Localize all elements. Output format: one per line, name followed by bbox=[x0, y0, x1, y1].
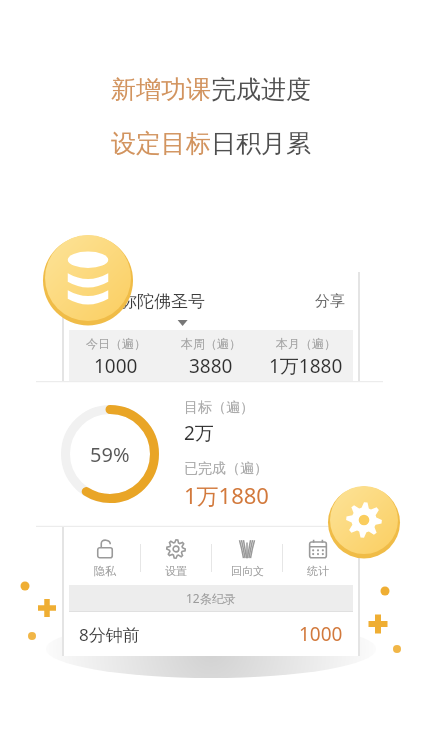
staticText: 59% bbox=[90, 441, 130, 468]
staticText: 本月（遍） bbox=[276, 336, 336, 351]
staticText: 阿弥陀佛圣号 bbox=[103, 291, 205, 312]
button[interactable]: 回向文 bbox=[212, 531, 282, 585]
button[interactable]: 统计 bbox=[283, 531, 353, 585]
staticText: 3880 bbox=[189, 353, 233, 379]
button[interactable]: 本周（遍） bbox=[163, 336, 258, 379]
staticText: 日积月累 bbox=[211, 128, 311, 159]
staticText: 回向文 bbox=[231, 564, 264, 578]
staticText: 12条纪录 bbox=[186, 590, 236, 606]
staticText: 分享 bbox=[315, 292, 345, 311]
button[interactable]: 阿弥陀佛圣号 bbox=[69, 282, 353, 320]
staticText: 隐私 bbox=[94, 564, 116, 578]
staticText: 今日（遍） bbox=[86, 336, 146, 351]
button[interactable]: 设置 bbox=[141, 531, 211, 585]
button[interactable]: 隐私 bbox=[69, 531, 140, 585]
staticText: 8分钟前 bbox=[79, 623, 140, 646]
staticText: 本周（遍） bbox=[181, 336, 241, 351]
button[interactable]: Settings bbox=[327, 483, 401, 557]
staticText: 完成进度 bbox=[211, 74, 311, 105]
staticText: 设定目标 bbox=[111, 128, 211, 159]
button[interactable]: Counter bbox=[42, 232, 134, 324]
staticText: 设置 bbox=[165, 564, 187, 578]
staticText: 1000 bbox=[94, 353, 138, 379]
staticText: 新增功课 bbox=[111, 74, 211, 105]
button[interactable]: 8分钟前 bbox=[69, 612, 353, 656]
button[interactable]: 今日（遍） bbox=[69, 336, 163, 379]
staticText: 已完成（遍） bbox=[184, 460, 268, 478]
staticText: 1万1880 bbox=[269, 353, 343, 379]
button[interactable]: 本月（遍） bbox=[258, 336, 353, 379]
staticText: 1万1880 bbox=[184, 480, 269, 510]
staticText: 目标（遍） bbox=[184, 399, 254, 417]
staticText: 2万 bbox=[184, 420, 214, 446]
staticText: 1000 bbox=[299, 621, 343, 647]
staticText: 统计 bbox=[307, 564, 329, 578]
